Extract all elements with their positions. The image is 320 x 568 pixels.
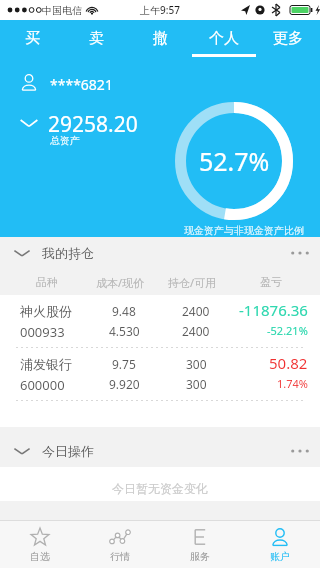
button[interactable]: 更多	[256, 20, 320, 56]
staticText: 1.74%	[277, 376, 308, 391]
staticText: 盈亏	[260, 275, 282, 289]
button[interactable]: Collapse	[0, 237, 320, 269]
staticText: 2400	[182, 303, 210, 319]
staticText: 中国电信	[42, 4, 82, 17]
other: Collapse	[12, 445, 32, 457]
staticText: -11876.36	[239, 300, 308, 320]
staticText: 000933	[20, 323, 65, 341]
staticText: 个人	[209, 29, 239, 48]
staticText: 更多	[273, 29, 303, 48]
other: Account	[20, 73, 38, 91]
staticText: 自选	[30, 550, 50, 563]
staticText: 52.7%	[199, 144, 270, 178]
button[interactable]: 服务	[160, 521, 240, 568]
staticText: 行情	[110, 550, 130, 563]
staticText: 现金资产与非现金资产比例	[184, 224, 304, 237]
staticText: 9.75	[112, 356, 136, 372]
button[interactable]: More options	[280, 435, 320, 467]
staticText: 浦发银行	[20, 356, 72, 372]
staticText: 上午9:57	[140, 3, 180, 17]
button[interactable]: 个人	[192, 20, 256, 56]
staticText: 2400	[182, 323, 210, 339]
staticText: 今日操作	[42, 443, 94, 459]
staticText: -52.21%	[267, 323, 308, 338]
other: Collapse	[12, 247, 32, 259]
staticText: 4.530	[109, 323, 140, 339]
button[interactable]: 行情	[80, 521, 160, 568]
button[interactable]: Collapse	[0, 435, 320, 467]
staticText: 持仓/可用	[168, 275, 217, 290]
staticText: 300	[186, 356, 207, 372]
staticText: 撤	[153, 29, 168, 48]
staticText: 买	[25, 29, 40, 48]
button[interactable]: 账户	[240, 521, 320, 568]
staticText: 成本/现价	[96, 275, 145, 290]
button[interactable]: More options	[280, 237, 320, 269]
staticText: 我的持仓	[42, 245, 94, 261]
staticText: 总资产	[50, 134, 80, 147]
staticText: 服务	[190, 550, 210, 563]
other: Expand	[18, 116, 40, 130]
staticText: 神火股份	[20, 303, 72, 319]
staticText: 卖	[89, 29, 104, 48]
button[interactable]: 浦发银行	[0, 348, 320, 400]
button[interactable]: 神火股份	[0, 295, 320, 347]
button[interactable]: 撤	[128, 20, 192, 56]
button[interactable]: 买	[0, 20, 64, 56]
staticText: 29258.20	[48, 110, 138, 139]
staticText: 今日暂无资金变化	[112, 481, 208, 496]
staticText: 50.82	[269, 353, 308, 373]
staticText: ****6821	[50, 75, 113, 94]
staticText: 600000	[20, 376, 65, 394]
button[interactable]: 自选	[0, 521, 80, 568]
staticText: 300	[186, 376, 207, 392]
button[interactable]: 卖	[64, 20, 128, 56]
staticText: 9.48	[112, 303, 136, 319]
staticText: 9.920	[109, 376, 140, 392]
staticText: 品种	[36, 275, 58, 289]
staticText: 账户	[270, 550, 290, 563]
